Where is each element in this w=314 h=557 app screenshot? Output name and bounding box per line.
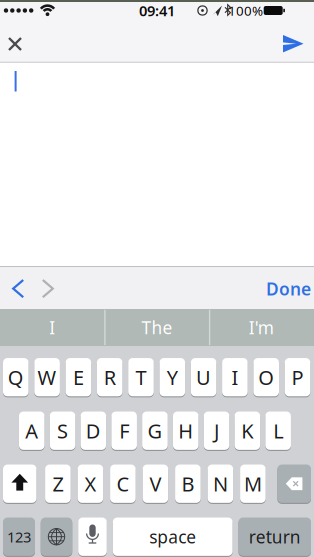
staticText: E <box>73 364 84 390</box>
button[interactable]: R <box>97 358 122 397</box>
button[interactable]: G <box>142 411 168 450</box>
button[interactable]: space <box>113 517 233 556</box>
button[interactable]: return <box>238 517 311 556</box>
staticText: Z <box>52 470 63 497</box>
staticText: C <box>116 470 129 497</box>
staticText: 09:41 <box>139 1 175 20</box>
staticText: D <box>86 417 101 444</box>
button[interactable]: Y <box>159 358 185 397</box>
button[interactable]: P <box>285 358 310 397</box>
button[interactable]: I <box>222 358 248 397</box>
button[interactable]: M <box>240 464 266 503</box>
staticText: X <box>84 470 96 497</box>
button[interactable]: X <box>78 464 103 503</box>
staticText: 123 <box>7 527 31 546</box>
button[interactable]: A <box>19 411 44 450</box>
staticText: return <box>249 525 301 548</box>
button[interactable]: S <box>50 411 75 450</box>
staticText: N <box>213 470 228 497</box>
button[interactable] <box>0 0 314 557</box>
button[interactable]: F <box>111 411 137 450</box>
staticText: Done <box>266 277 311 300</box>
button[interactable]: E <box>66 358 91 397</box>
button[interactable] <box>41 517 72 556</box>
button[interactable]: B <box>175 464 201 503</box>
staticText: I <box>49 316 55 339</box>
button[interactable]: U <box>191 358 216 397</box>
button[interactable]: W <box>34 358 60 397</box>
staticText: J <box>214 417 219 444</box>
staticText: S <box>57 417 68 444</box>
button[interactable] <box>277 464 311 503</box>
button[interactable]: C <box>110 464 136 503</box>
button[interactable] <box>0 0 314 557</box>
staticText: I'm <box>249 316 274 339</box>
staticText: The <box>141 316 172 339</box>
staticText: space <box>149 525 196 548</box>
staticText: B <box>181 470 194 497</box>
staticText: M <box>244 470 262 497</box>
button[interactable] <box>78 517 107 556</box>
button[interactable]: H <box>173 411 198 450</box>
button[interactable]: Q <box>3 358 29 397</box>
button[interactable]: K <box>234 411 260 450</box>
staticText: K <box>241 417 253 444</box>
button[interactable] <box>3 464 36 503</box>
staticText: P <box>291 364 303 390</box>
button[interactable]: L <box>265 411 291 450</box>
staticText: O <box>258 364 274 390</box>
button[interactable]: T <box>128 358 154 397</box>
staticText: 100% <box>228 2 263 19</box>
button[interactable]: The <box>141 316 172 339</box>
staticText: L <box>273 417 283 444</box>
button[interactable]: D <box>80 411 106 450</box>
button[interactable]: Z <box>45 464 71 503</box>
button[interactable]: V <box>143 464 168 503</box>
staticText: W <box>38 364 57 390</box>
staticText: T <box>135 364 146 390</box>
staticText: Y <box>167 364 178 390</box>
staticText: G <box>147 417 162 444</box>
staticText: F <box>119 417 129 444</box>
button[interactable]: J <box>204 411 229 450</box>
staticText: Q <box>8 364 24 390</box>
staticText: U <box>196 364 211 390</box>
staticText: H <box>178 417 193 444</box>
button[interactable]: N <box>208 464 233 503</box>
button[interactable]: Done <box>266 277 311 300</box>
button[interactable]: I <box>49 316 55 339</box>
staticText: R <box>104 364 116 390</box>
button[interactable] <box>0 0 314 557</box>
button[interactable]: I'm <box>249 316 274 339</box>
staticText: A <box>25 417 38 444</box>
staticText: V <box>149 470 161 497</box>
button[interactable]: 123 <box>3 517 35 556</box>
button[interactable]: O <box>253 358 279 397</box>
staticText: I <box>231 364 238 390</box>
button[interactable] <box>0 0 314 557</box>
